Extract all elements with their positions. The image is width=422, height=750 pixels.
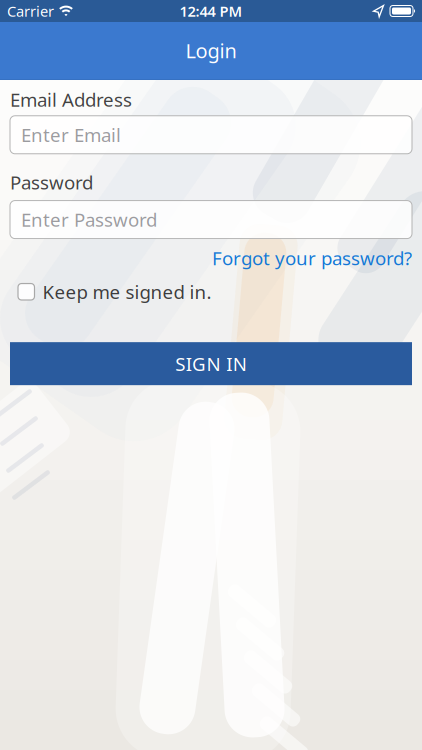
staticText: 12:44 PM — [179, 1, 242, 21]
staticText: Email Address — [10, 87, 132, 112]
staticText: Forgot your password? — [212, 246, 412, 270]
staticText: Login — [185, 37, 236, 64]
button[interactable]: Enter Email — [10, 116, 412, 154]
button[interactable]: Enter Password — [10, 201, 412, 239]
staticText: Enter Password — [21, 207, 157, 232]
staticText: Password — [10, 170, 93, 195]
staticText: Carrier — [7, 1, 54, 21]
button[interactable]: SIGN IN — [10, 342, 412, 385]
button[interactable]: Forgot your password? — [212, 246, 412, 270]
staticText: Enter Email — [21, 122, 121, 147]
staticText: Keep me signed in. — [42, 279, 211, 304]
button[interactable]: Keep me signed in. — [10, 279, 211, 304]
staticText: SIGN IN — [175, 351, 247, 376]
